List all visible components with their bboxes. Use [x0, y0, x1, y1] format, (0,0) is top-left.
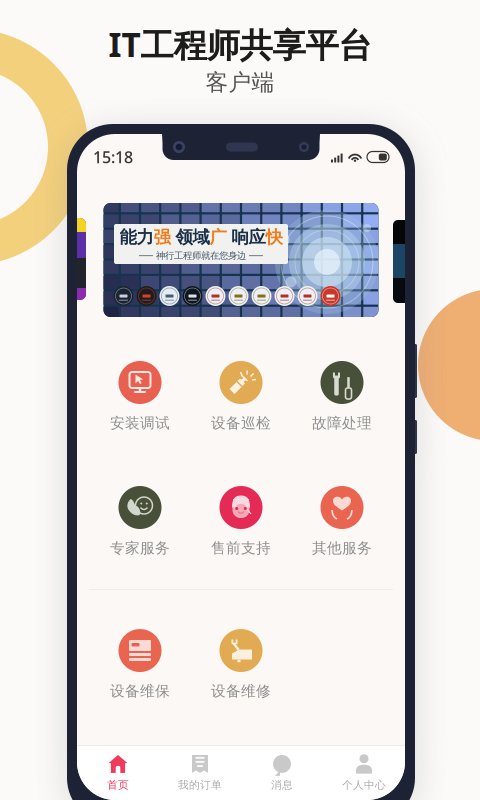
- button[interactable]: 专家服务: [89, 486, 190, 557]
- button[interactable]: 故障处理: [291, 361, 392, 432]
- staticText: IT工程师共享平台: [108, 22, 371, 66]
- staticText: 个人中心: [342, 778, 386, 791]
- button[interactable]: 设备巡检: [190, 361, 291, 432]
- staticText: 设备维保: [110, 682, 170, 700]
- button[interactable]: 售前支持: [190, 486, 291, 557]
- staticText: 专家服务: [110, 539, 170, 557]
- button[interactable]: Promotion: [393, 220, 417, 303]
- button[interactable]: 首页: [77, 746, 159, 800]
- button[interactable]: 消息: [241, 746, 323, 800]
- staticText: 其他服务: [312, 539, 372, 557]
- staticText: 响应: [226, 227, 265, 248]
- staticText: 强: [153, 227, 170, 248]
- staticText: 快: [265, 227, 282, 248]
- button[interactable]: 能力: [103, 203, 378, 317]
- staticText: 客户端: [205, 68, 274, 96]
- button[interactable]: 个人中心: [323, 746, 405, 800]
- button[interactable]: 设备维修: [190, 629, 291, 700]
- staticText: 15:18: [93, 146, 133, 168]
- button[interactable]: 设备维保: [89, 629, 190, 700]
- button[interactable]: 安装调试: [89, 361, 190, 432]
- staticText: 消息: [271, 778, 293, 791]
- button[interactable]: Promotion: [60, 218, 86, 300]
- staticText: 广: [209, 227, 226, 248]
- staticText: 安装调试: [110, 414, 170, 432]
- staticText: 故障处理: [312, 414, 372, 432]
- staticText: 设备巡检: [211, 414, 271, 432]
- staticText: 售前支持: [211, 539, 271, 557]
- staticText: 我的订单: [178, 778, 222, 791]
- staticText: 领域: [170, 227, 209, 248]
- staticText: 神行工程师就在您身边: [156, 250, 246, 261]
- button[interactable]: 其他服务: [291, 486, 392, 557]
- button[interactable]: 我的订单: [159, 746, 241, 800]
- staticText: 设备维修: [211, 682, 271, 700]
- staticText: 能力: [119, 227, 153, 248]
- staticText: 首页: [107, 778, 129, 791]
